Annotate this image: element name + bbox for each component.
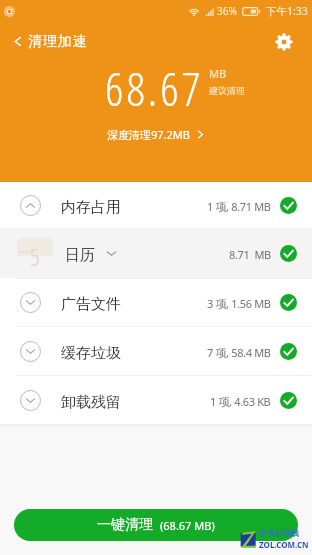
staticText: 缓存垃圾 xyxy=(61,344,121,363)
button[interactable]: 一键清理 xyxy=(14,509,298,541)
staticText: 中关村在线 xyxy=(259,528,299,538)
staticText: 7 项, 58.4 MB xyxy=(207,345,271,360)
staticText: 1 项, 4.63 KB xyxy=(210,394,271,409)
staticText: 日历 xyxy=(65,246,95,265)
staticText: 一键清理 xyxy=(97,516,153,534)
button[interactable]: 内存占用 xyxy=(0,182,312,228)
staticText: 清理加速 xyxy=(28,33,88,51)
staticText: 5 xyxy=(30,240,40,273)
button[interactable]: 清理加速 xyxy=(12,24,88,59)
button[interactable]: Settings xyxy=(272,24,296,59)
staticText: 36% xyxy=(217,4,237,18)
button[interactable]: 卸载残留 xyxy=(0,376,312,424)
button[interactable]: 深度清理97.2MB xyxy=(107,127,205,142)
staticText: 68.67 xyxy=(105,57,204,120)
staticText: 8.71 MB xyxy=(229,247,271,262)
button[interactable]: 广告文件 xyxy=(0,279,312,326)
staticText: 3 项, 1.56 MB xyxy=(207,296,271,311)
staticText: MB xyxy=(209,66,227,81)
staticText: ZOL.COM.CN xyxy=(259,539,309,550)
staticText: 深度清理97.2MB xyxy=(107,127,190,142)
staticText: 内存占用 xyxy=(61,198,121,217)
staticText: 下午1:33 xyxy=(266,4,308,18)
staticText: 卸载残留 xyxy=(61,393,121,412)
staticText: 建议清理 xyxy=(209,85,245,96)
staticText: (68.67 MB) xyxy=(160,518,215,533)
staticText: 1 项, 8.71 MB xyxy=(207,199,271,214)
staticText: 广告文件 xyxy=(61,295,121,314)
button[interactable]: 5 xyxy=(0,228,312,278)
button[interactable]: 缓存垃圾 xyxy=(0,327,312,375)
